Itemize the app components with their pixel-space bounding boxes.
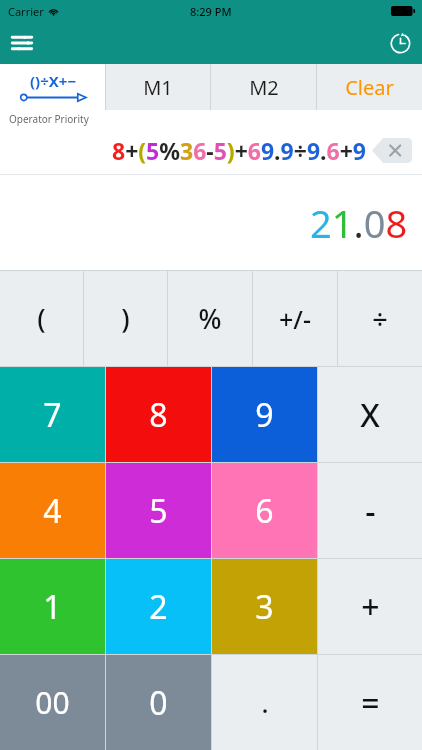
staticText: 3 (255, 585, 274, 629)
staticText: ( (37, 300, 46, 337)
staticText: 00 (35, 682, 70, 723)
staticText: 1 (43, 585, 62, 629)
button[interactable]: % (168, 271, 252, 366)
button[interactable]: 9 (212, 367, 317, 462)
button[interactable]: Clear (317, 64, 422, 110)
button[interactable]: 00 (0, 655, 105, 750)
staticText: ) (121, 300, 130, 337)
button[interactable]: 5 (106, 463, 211, 558)
button[interactable]: + (318, 559, 422, 654)
staticText: M1 (143, 74, 173, 101)
button[interactable]: ÷ (338, 271, 422, 366)
button[interactable]: . (212, 655, 317, 750)
button[interactable]: Backspace (372, 138, 412, 163)
staticText: 6 (255, 489, 274, 533)
button[interactable]: 0 (106, 655, 211, 750)
staticText: 5 (149, 489, 168, 533)
staticText: - (365, 489, 376, 533)
button[interactable]: Operator Priority (0, 64, 105, 110)
staticText: % (198, 300, 222, 337)
staticText: 8:29 PM (190, 4, 232, 19)
button[interactable]: 1 (0, 559, 105, 654)
staticText: X (360, 393, 380, 437)
staticText: 7 (43, 393, 62, 437)
button[interactable]: M1 (106, 64, 210, 110)
staticText: 4 (43, 489, 62, 533)
staticText: Carrier (8, 4, 44, 19)
button[interactable]: M2 (211, 64, 316, 110)
staticText: Clear (345, 74, 394, 101)
staticText: 8 (149, 393, 168, 437)
staticText: 21.08 (310, 197, 408, 249)
staticText: ()÷X+− (30, 71, 77, 91)
button[interactable]: ) (84, 271, 167, 366)
button[interactable]: 7 (0, 367, 105, 462)
button[interactable]: 2 (106, 559, 211, 654)
staticText: = (361, 681, 380, 725)
staticText: ÷ (372, 300, 388, 337)
button[interactable]: 4 (0, 463, 105, 558)
button[interactable]: 6 (212, 463, 317, 558)
button[interactable]: X (318, 367, 422, 462)
staticText: 9 (255, 393, 274, 437)
button[interactable]: Settings (0, 22, 44, 64)
staticText: +/- (279, 302, 311, 336)
staticText: Operator Priority (9, 112, 89, 126)
staticText: . (261, 685, 269, 720)
staticText: 0 (149, 681, 168, 725)
staticText: 8+(5%36-5)+69.9÷9.6+9 (112, 135, 366, 166)
staticText: + (361, 585, 380, 629)
button[interactable]: History (378, 22, 422, 64)
button[interactable]: ( (0, 271, 83, 366)
button[interactable]: = (318, 655, 422, 750)
button[interactable]: - (318, 463, 422, 558)
staticText: 2 (149, 585, 168, 629)
button[interactable]: 8 (106, 367, 211, 462)
staticText: M2 (249, 74, 279, 101)
button[interactable]: 3 (212, 559, 317, 654)
button[interactable]: +/- (253, 271, 337, 366)
